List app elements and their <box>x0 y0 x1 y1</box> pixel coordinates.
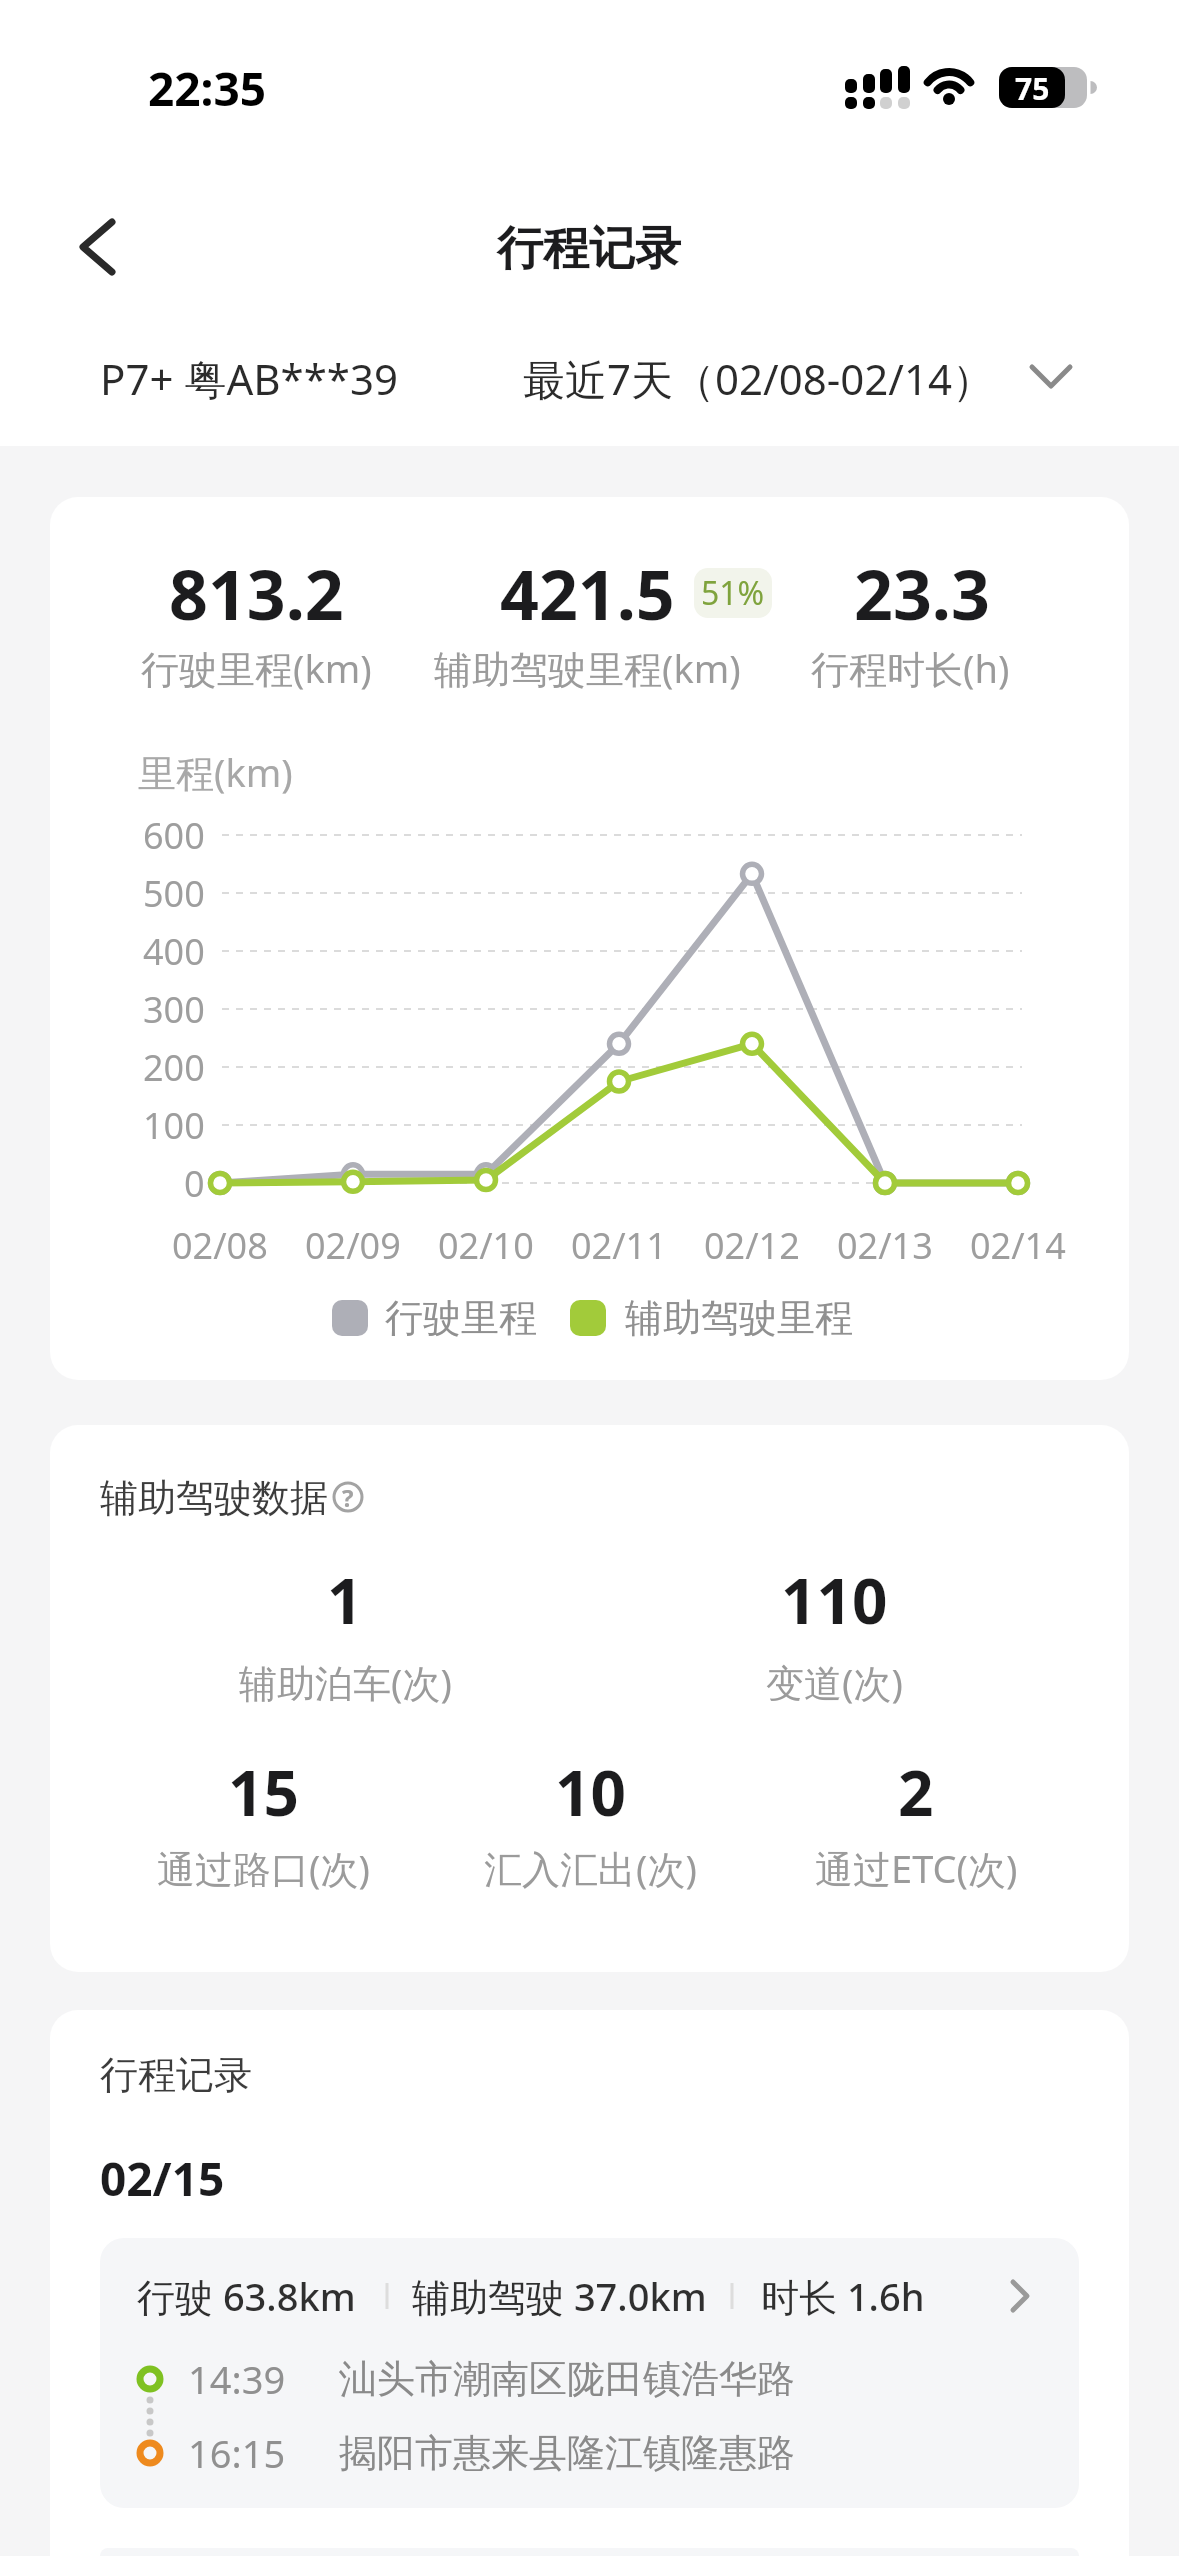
staticText: 51% <box>701 571 765 615</box>
staticText: 通过ETC(次) <box>815 1842 1018 1894</box>
staticText: 里程(km) <box>138 746 293 798</box>
staticText: 辅助驾驶 37.0km <box>412 2270 707 2322</box>
button[interactable] <box>100 2238 1079 2508</box>
staticText: 变道(次) <box>766 1656 903 1708</box>
staticText: 2 <box>898 1750 934 1834</box>
staticText: 辅助驾驶里程(km) <box>434 642 741 694</box>
staticText: 100 <box>143 1101 205 1150</box>
staticText: 最近7天（02/08-02/14） <box>523 350 994 407</box>
button[interactable] <box>60 212 140 282</box>
staticText: 辅助驾驶里程 <box>625 1294 853 1342</box>
staticText: 02/09 <box>305 1221 401 1270</box>
staticText: 辅助驾驶数据 <box>100 1474 328 1522</box>
staticText: 02/08 <box>172 1221 268 1270</box>
staticText: 汇入汇出(次) <box>484 1842 697 1894</box>
button[interactable] <box>510 340 1090 416</box>
staticText: 行驶 63.8km <box>137 2270 356 2322</box>
staticText: 14:39 <box>188 2353 286 2405</box>
staticText: 02/15 <box>100 2147 225 2210</box>
staticText: 汕头市潮南区陇田镇浩华路 <box>339 2355 795 2403</box>
staticText: 0 <box>184 1159 205 1208</box>
staticText: 02/11 <box>571 1221 667 1270</box>
staticText: 10 <box>555 1750 626 1834</box>
staticText: 行驶里程(km) <box>141 642 372 694</box>
staticText: 02/12 <box>704 1221 800 1270</box>
staticText: 300 <box>143 985 205 1034</box>
staticText: 行程时长(h) <box>811 642 1010 694</box>
staticText: 75 <box>1015 68 1050 109</box>
staticText: 行程记录 <box>100 2051 252 2099</box>
staticText: 02/10 <box>438 1221 534 1270</box>
staticText: 200 <box>143 1043 205 1092</box>
staticText: 行程记录 <box>497 220 681 278</box>
staticText: 110 <box>781 1558 888 1642</box>
button[interactable] <box>320 1474 368 1522</box>
staticText: ? <box>342 1481 354 1514</box>
staticText: 辅助泊车(次) <box>239 1656 452 1708</box>
staticText: 813.2 <box>169 547 344 637</box>
staticText: 23.3 <box>854 547 990 637</box>
staticText: 02/13 <box>837 1221 933 1270</box>
staticText: 500 <box>143 869 205 918</box>
staticText: 1 <box>327 1558 363 1642</box>
staticText: 通过路口(次) <box>157 1842 370 1894</box>
staticText: 22:35 <box>148 57 267 120</box>
staticText: P7+ 粤AB***39 <box>100 350 398 407</box>
staticText: 02/14 <box>970 1221 1066 1270</box>
staticText: 421.5 <box>500 547 675 637</box>
staticText: 600 <box>143 811 205 860</box>
staticText: 16:15 <box>188 2427 286 2479</box>
staticText: 时长 1.6h <box>761 2270 925 2322</box>
staticText: 15 <box>228 1750 299 1834</box>
staticText: 400 <box>143 927 205 976</box>
staticText: 揭阳市惠来县隆江镇隆惠路 <box>339 2429 795 2477</box>
staticText: 行驶里程 <box>385 1294 537 1342</box>
